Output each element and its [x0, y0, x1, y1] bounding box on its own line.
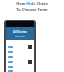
- staticText: To Choose From: [16, 7, 48, 12]
- button[interactable]: [6, 64, 34, 69]
- button[interactable]: [6, 49, 34, 54]
- staticText: How Hide Chats: [16, 1, 48, 6]
- button[interactable]: [6, 54, 34, 59]
- button[interactable]: [6, 44, 34, 49]
- button[interactable]: [6, 59, 34, 64]
- staticText: All Stories: [13, 30, 27, 34]
- button[interactable]: [6, 69, 34, 72]
- staticText: select one: [15, 35, 25, 38]
